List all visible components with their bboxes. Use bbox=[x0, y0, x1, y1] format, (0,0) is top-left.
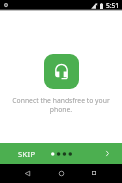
staticText: 5:51 bbox=[106, 1, 120, 10]
staticText: Connect the handsfree to your phone. bbox=[11, 96, 111, 114]
button[interactable]: SKIP bbox=[0, 145, 48, 163]
button[interactable]: Next bbox=[97, 143, 117, 163]
button[interactable]: Home bbox=[52, 164, 70, 182]
staticText: SKIP bbox=[18, 149, 36, 159]
button[interactable]: Recent apps bbox=[85, 164, 103, 182]
button[interactable]: Back bbox=[18, 164, 36, 182]
